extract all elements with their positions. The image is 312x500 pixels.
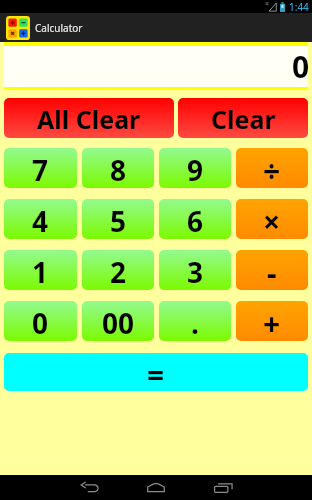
button[interactable]: 9 — [159, 148, 231, 188]
staticText: 3 — [187, 253, 204, 290]
staticText: Calculator — [35, 21, 83, 35]
button[interactable]: 5 — [82, 199, 154, 239]
button[interactable]: Display — [4, 46, 308, 87]
staticText: 0 — [32, 304, 49, 341]
staticText: Clear — [211, 102, 276, 136]
staticText: 2 — [110, 253, 127, 290]
button[interactable]: × — [236, 199, 308, 239]
staticText: 4 — [32, 202, 49, 239]
button[interactable]: Home — [130, 475, 182, 500]
staticText: = — [147, 354, 165, 391]
button[interactable]: 0 — [4, 301, 77, 341]
staticText: 00 — [102, 304, 135, 341]
staticText: 6 — [187, 202, 204, 239]
staticText: All Clear — [37, 102, 141, 136]
button[interactable]: 2 — [82, 250, 154, 290]
button[interactable]: . — [159, 301, 231, 341]
button[interactable]: Calculator app icon — [6, 16, 30, 40]
staticText: 9 — [187, 151, 204, 188]
button[interactable]: 4 — [4, 199, 77, 239]
staticText: 0 — [292, 46, 310, 87]
staticText: 5 — [110, 202, 127, 239]
button[interactable]: 1 — [4, 250, 77, 290]
button[interactable]: 3 — [159, 250, 231, 290]
button[interactable]: 6 — [159, 199, 231, 239]
staticText: × — [263, 201, 281, 239]
button[interactable]: Clear — [178, 98, 308, 138]
button[interactable]: 7 — [4, 148, 77, 188]
staticText: - — [267, 252, 277, 290]
button[interactable]: + — [236, 301, 308, 341]
staticText: ÷ — [263, 150, 281, 188]
button[interactable]: = — [4, 353, 308, 391]
staticText: 1:44 — [289, 0, 309, 13]
button[interactable]: 8 — [82, 148, 154, 188]
button[interactable]: Back — [64, 475, 116, 500]
button[interactable]: ÷ — [236, 148, 308, 188]
staticText: 1 — [32, 253, 49, 290]
staticText: + — [263, 303, 281, 341]
button[interactable]: - — [236, 250, 308, 290]
button[interactable]: 00 — [82, 301, 154, 341]
staticText: 8 — [110, 151, 127, 188]
button[interactable]: Recent apps — [197, 475, 249, 500]
staticText: 7 — [32, 151, 49, 188]
staticText: . — [191, 304, 199, 341]
button[interactable]: All Clear — [4, 98, 174, 138]
